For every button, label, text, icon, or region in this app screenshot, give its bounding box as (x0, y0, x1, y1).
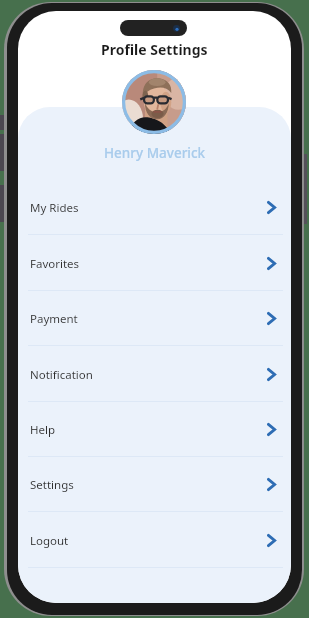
button[interactable]: Settings (18, 457, 291, 512)
button[interactable]: Notification (18, 347, 291, 402)
staticText: Help (30, 422, 56, 438)
staticText: Logout (30, 533, 69, 549)
staticText: Settings (30, 477, 74, 493)
staticText: Profile Settings (101, 40, 208, 59)
button[interactable]: My Rides (18, 180, 291, 235)
button[interactable]: Payment (18, 291, 291, 346)
staticText: Favorites (30, 256, 80, 272)
staticText: Payment (30, 311, 78, 327)
staticText: Henry Maverick (104, 144, 206, 162)
button[interactable]: Help (18, 402, 291, 457)
button[interactable]: Logout (18, 513, 291, 568)
staticText: My Rides (30, 200, 79, 216)
button[interactable]: Favorites (18, 236, 291, 291)
staticText: Notification (30, 367, 93, 383)
